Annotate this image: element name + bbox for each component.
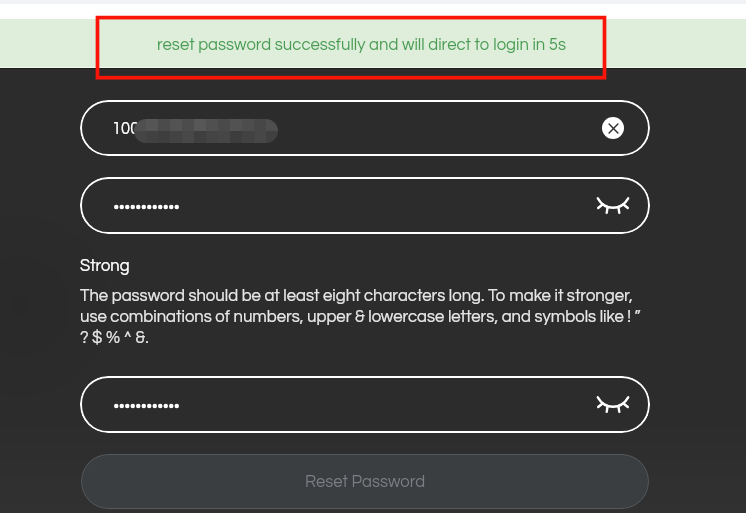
button[interactable]: Show password [592,185,634,227]
button[interactable]: Clear text [602,117,624,139]
button[interactable]: Show password [592,384,634,426]
staticText: Strong [80,257,130,274]
button[interactable]: Show password [80,177,650,234]
staticText: Reset Password [305,473,426,490]
staticText: 100 [112,120,140,137]
staticText: reset password successfully and will dir… [157,36,567,53]
button[interactable]: Show password [80,376,650,433]
button[interactable]: 100 [80,100,650,156]
button[interactable]: Reset Password [81,454,649,509]
staticText: The password should be at least eight ch… [80,287,680,346]
